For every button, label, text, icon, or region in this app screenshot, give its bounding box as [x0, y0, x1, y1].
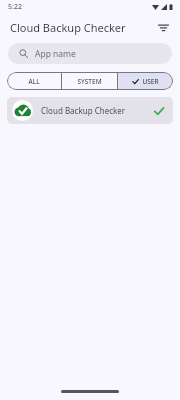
- staticText: App name: [35, 48, 76, 60]
- button[interactable]: Cloud Backup Checker: [7, 97, 173, 124]
- staticText: 5:22: [8, 2, 22, 12]
- staticText: Cloud Backup Checker: [41, 105, 126, 116]
- button[interactable]: USER: [118, 72, 173, 90]
- staticText: SYSTEM: [77, 77, 102, 86]
- staticText: Cloud Backup Checker: [10, 20, 126, 35]
- button[interactable]: Sort and filter: [152, 16, 174, 38]
- button[interactable]: App name: [8, 43, 172, 64]
- staticText: ALL: [28, 77, 40, 86]
- button[interactable]: SYSTEM: [62, 72, 117, 90]
- staticText: USER: [142, 77, 159, 86]
- button[interactable]: ALL: [7, 72, 61, 90]
